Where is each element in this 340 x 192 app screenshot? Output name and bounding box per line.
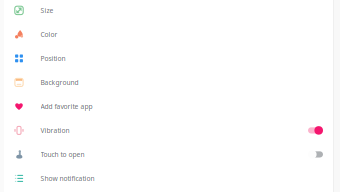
button[interactable]: Size <box>0 0 333 22</box>
staticText: Vibration <box>40 126 69 135</box>
button[interactable]: Show notification <box>0 166 333 190</box>
button[interactable]: Position <box>0 46 333 70</box>
staticText: Position <box>40 54 65 63</box>
staticText: Show notification <box>40 174 94 183</box>
button[interactable]: Color <box>0 22 333 46</box>
staticText: Size <box>40 6 53 15</box>
staticText: Color <box>40 30 57 39</box>
button[interactable]: Vibration <box>0 118 333 142</box>
button[interactable]: Add favorite app <box>0 94 333 118</box>
staticText: Add favorite app <box>40 102 92 111</box>
staticText: Touch to open <box>40 150 84 159</box>
button[interactable]: Touch to open <box>0 142 333 166</box>
button[interactable]: Background <box>0 70 333 94</box>
staticText: Background <box>40 78 78 87</box>
